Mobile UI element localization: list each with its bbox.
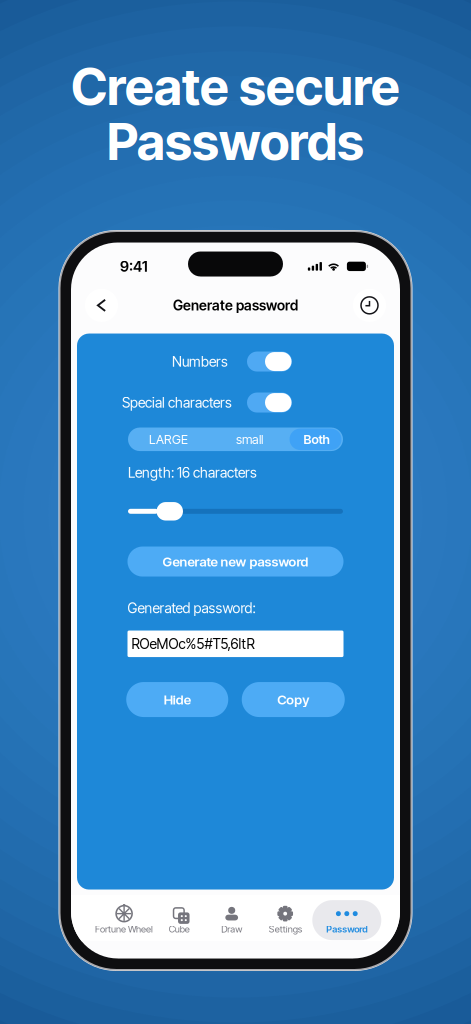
staticText: Fortune Wheel [95, 923, 153, 935]
staticText: ROeMOc%5#T5,6ltR [131, 635, 254, 652]
button[interactable]: Fortune Wheel [91, 900, 157, 940]
staticText: Generated password: [127, 600, 255, 616]
button[interactable]: Numbers [77, 351, 394, 371]
button[interactable]: Both [290, 427, 343, 451]
staticText: Create secure [71, 56, 400, 117]
staticText: Settings [269, 923, 302, 935]
staticText: Length: 16 characters [128, 464, 257, 481]
staticText: 9:41 [120, 257, 148, 275]
button[interactable]: Cube [159, 900, 199, 940]
staticText: Both [303, 432, 329, 447]
staticText: Cube [169, 923, 190, 935]
staticText: Passwords [107, 111, 364, 172]
staticText: Draw [221, 923, 242, 935]
staticText: Copy [277, 691, 309, 708]
button[interactable]: LARGE [128, 427, 209, 451]
button[interactable]: Back [85, 289, 118, 322]
button[interactable]: Password [312, 900, 381, 940]
staticText: Generate new password [162, 553, 308, 570]
staticText: Hide [164, 691, 191, 708]
button[interactable]: Special characters [77, 392, 394, 412]
button[interactable]: Draw [212, 900, 252, 940]
staticText: Special characters [122, 394, 232, 411]
button[interactable]: Copy [242, 682, 345, 717]
button[interactable]: Settings [261, 900, 309, 940]
staticText: small [236, 432, 263, 447]
staticText: Numbers [172, 353, 228, 370]
button[interactable]: small [209, 427, 290, 451]
staticText: Password [326, 923, 367, 935]
button[interactable]: Password history [353, 289, 386, 322]
staticText: LARGE [149, 432, 188, 447]
staticText: Generate password [173, 297, 298, 314]
button[interactable]: Generate new password [127, 546, 343, 576]
button[interactable]: Hide [126, 682, 228, 717]
